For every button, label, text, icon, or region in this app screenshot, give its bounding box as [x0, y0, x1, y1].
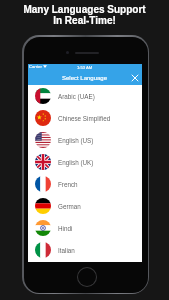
staticText: English (UK) [58, 159, 94, 166]
button[interactable]: Close [128, 71, 142, 85]
button[interactable]: Chinese Simplified [28, 107, 142, 129]
staticText: Hindi [58, 225, 73, 232]
staticText: Chinese Simplified [58, 115, 111, 122]
staticText: Select Language [62, 75, 108, 82]
button[interactable]: Home [77, 267, 97, 287]
staticText: English (US) [58, 137, 94, 144]
staticText: In Real-Time! [53, 15, 116, 26]
staticText: Many Languages Support [23, 4, 146, 15]
staticText: 1:53 AM [77, 65, 93, 70]
staticText: German [58, 203, 81, 210]
staticText: French [58, 181, 78, 188]
button[interactable]: Italian [28, 239, 142, 261]
button[interactable]: German [28, 195, 142, 217]
button[interactable]: Arabic (UAE) [28, 85, 142, 107]
button[interactable]: Hindi [28, 217, 142, 239]
button[interactable]: English (US) [28, 129, 142, 151]
button[interactable]: French [28, 173, 142, 195]
staticText: Carrier [29, 64, 42, 69]
button[interactable]: English (UK) [28, 151, 142, 173]
staticText: Italian [58, 247, 75, 254]
staticText: Arabic (UAE) [58, 93, 95, 100]
